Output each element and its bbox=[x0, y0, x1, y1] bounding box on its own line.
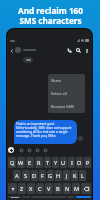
button[interactable]: H bbox=[55, 170, 62, 181]
button[interactable]: Back bbox=[8, 47, 15, 54]
staticText: X bbox=[29, 185, 33, 192]
button[interactable]: B bbox=[54, 183, 62, 194]
staticText: Y bbox=[54, 159, 58, 166]
button[interactable]: ?123 bbox=[8, 196, 21, 198]
button[interactable]: Q bbox=[8, 157, 16, 168]
button[interactable]: Search bbox=[74, 46, 83, 55]
button[interactable]: L bbox=[79, 170, 86, 181]
staticText: A bbox=[15, 172, 19, 179]
button[interactable]: C bbox=[36, 183, 44, 194]
button[interactable]: P bbox=[84, 157, 91, 168]
staticText: W bbox=[18, 159, 24, 166]
button[interactable]: J bbox=[63, 170, 70, 181]
button[interactable]: Y bbox=[52, 157, 59, 168]
button[interactable]: Share bbox=[48, 74, 85, 87]
staticText: ?123 bbox=[11, 196, 19, 198]
button[interactable]: Remove SMS accents bbox=[48, 100, 85, 113]
button[interactable]: Gallery bbox=[26, 147, 32, 153]
staticText: Remove SMS accents bbox=[51, 104, 85, 109]
button[interactable]: N bbox=[63, 183, 71, 194]
button[interactable]: Shift bbox=[8, 183, 17, 194]
button[interactable]: V bbox=[45, 183, 53, 194]
button[interactable]: , bbox=[22, 196, 30, 198]
staticText: P bbox=[86, 159, 90, 166]
button[interactable]: Z bbox=[18, 183, 26, 194]
button[interactable]: T bbox=[44, 157, 51, 168]
staticText: R bbox=[37, 159, 41, 166]
staticText: K bbox=[73, 172, 77, 179]
button[interactable]: Emoji bbox=[34, 147, 40, 153]
button[interactable]: E bbox=[26, 157, 34, 168]
button[interactable]: A bbox=[13, 170, 21, 181]
staticText: Z bbox=[20, 185, 24, 192]
staticText: D bbox=[32, 172, 37, 179]
button[interactable]: R bbox=[35, 157, 43, 168]
staticText: C bbox=[38, 185, 42, 192]
button[interactable]: O bbox=[76, 157, 83, 168]
button[interactable]: Call bbox=[65, 46, 74, 55]
staticText: N bbox=[65, 185, 70, 192]
staticText: And reclaim 160 SMS characters bbox=[18, 5, 83, 26]
button[interactable]: Camera bbox=[18, 147, 24, 153]
button[interactable]: U bbox=[60, 157, 67, 168]
staticText: T bbox=[46, 159, 50, 166]
button[interactable]: W bbox=[17, 157, 25, 168]
button[interactable]: I bbox=[68, 157, 75, 168]
button[interactable]: More options bbox=[83, 47, 90, 54]
button[interactable]: . bbox=[67, 196, 75, 198]
button[interactable]: G bbox=[47, 170, 54, 181]
staticText: S bbox=[24, 172, 28, 179]
staticText: O bbox=[77, 159, 82, 166]
staticText: J bbox=[66, 172, 68, 179]
staticText: F bbox=[41, 172, 44, 179]
button[interactable]: Enter bbox=[76, 196, 91, 198]
staticText: U bbox=[61, 159, 66, 166]
staticText: Share bbox=[51, 78, 62, 83]
button[interactable]: Select all bbox=[48, 87, 85, 100]
button[interactable]: Backspace bbox=[81, 183, 91, 194]
button[interactable]: Add attachment bbox=[8, 147, 14, 153]
staticText: E bbox=[28, 159, 32, 166]
staticText: Q bbox=[10, 159, 15, 166]
staticText: Select all bbox=[51, 91, 67, 96]
staticText: That is an important goal. Unfortunately… bbox=[16, 122, 75, 138]
staticText: B bbox=[56, 185, 60, 192]
staticText: L bbox=[81, 172, 84, 179]
button[interactable]: D bbox=[31, 170, 38, 181]
button[interactable]: S bbox=[22, 170, 30, 181]
staticText: V bbox=[47, 185, 51, 192]
button[interactable]: Voice bbox=[42, 147, 48, 153]
staticText: I bbox=[71, 159, 73, 166]
button[interactable]: K bbox=[71, 170, 78, 181]
staticText: H bbox=[56, 172, 61, 179]
button[interactable]: F bbox=[39, 170, 46, 181]
staticText: G bbox=[48, 172, 53, 179]
button[interactable]: M bbox=[72, 183, 80, 194]
staticText: M bbox=[74, 185, 79, 192]
button[interactable]: X bbox=[27, 183, 35, 194]
